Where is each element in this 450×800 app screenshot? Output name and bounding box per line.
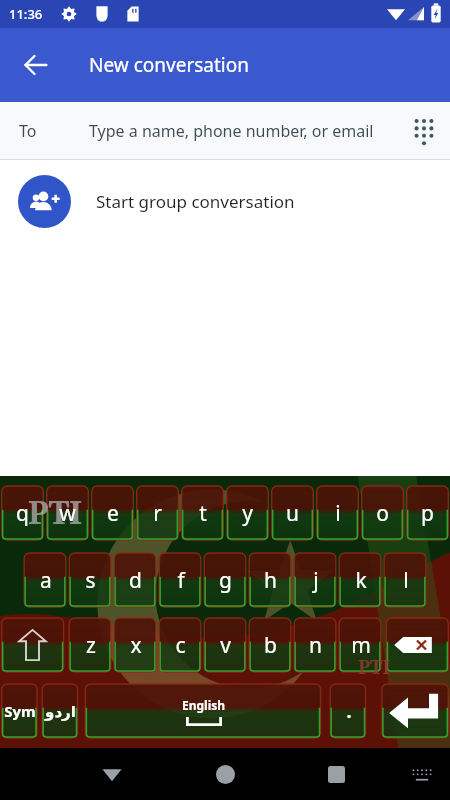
staticText: p <box>421 499 434 528</box>
button[interactable]: Start group conversation <box>0 160 450 242</box>
button[interactable]: q <box>0 486 45 540</box>
staticText: PTI <box>358 654 391 680</box>
staticText: English <box>182 697 226 713</box>
button[interactable]: o <box>360 486 405 540</box>
staticText: y <box>242 499 253 528</box>
button[interactable]: a <box>23 553 68 607</box>
button[interactable]: p <box>405 486 450 540</box>
button[interactable]: Sym <box>0 684 39 738</box>
button[interactable]: Hide keyboard <box>88 750 136 798</box>
button[interactable]: w <box>45 486 90 540</box>
button[interactable]: z <box>68 618 113 672</box>
button[interactable]: b <box>248 618 293 672</box>
staticText: w <box>59 499 76 528</box>
staticText: n <box>309 631 322 660</box>
button[interactable]: Shift <box>0 618 65 672</box>
staticText: r <box>153 499 162 528</box>
button[interactable]: Home <box>201 750 249 798</box>
staticText: h <box>264 566 277 595</box>
staticText: m <box>351 631 371 660</box>
staticText: j <box>313 566 319 595</box>
staticText: s <box>85 566 96 595</box>
button[interactable]: Recents <box>312 750 360 798</box>
staticText: Sym <box>4 701 36 721</box>
staticText: New conversation <box>89 52 249 78</box>
staticText: d <box>129 566 142 595</box>
staticText: u <box>286 499 299 528</box>
button[interactable]: u <box>270 486 315 540</box>
button[interactable]: . <box>329 684 368 738</box>
staticText: z <box>86 631 96 660</box>
button[interactable]: n <box>293 618 338 672</box>
button[interactable]: Dialpad <box>401 108 447 154</box>
button[interactable]: g <box>203 553 248 607</box>
button[interactable]: Navigate up <box>12 41 60 89</box>
staticText: q <box>16 499 29 528</box>
staticText: l <box>403 566 409 595</box>
button[interactable]: j <box>293 553 338 607</box>
staticText: Type a name, phone number, or email <box>89 120 401 142</box>
button[interactable]: i <box>315 486 360 540</box>
staticText: i <box>335 499 341 528</box>
button[interactable]: Enter <box>380 684 450 738</box>
button[interactable]: k <box>338 553 383 607</box>
button[interactable]: e <box>90 486 135 540</box>
staticText: o <box>376 499 389 528</box>
button[interactable]: y <box>225 486 270 540</box>
button[interactable]: f <box>158 553 203 607</box>
button[interactable]: r <box>135 486 180 540</box>
staticText: . <box>346 699 352 724</box>
staticText: PTI <box>28 490 83 534</box>
staticText: f <box>177 566 185 595</box>
button[interactable]: t <box>180 486 225 540</box>
button[interactable]: h <box>248 553 293 607</box>
staticText: t <box>199 499 207 528</box>
staticText: g <box>219 566 232 595</box>
staticText: b <box>264 631 277 660</box>
button[interactable]: x <box>113 618 158 672</box>
button[interactable]: s <box>68 553 113 607</box>
staticText: c <box>175 631 186 660</box>
staticText: 11:36 <box>9 5 43 23</box>
button[interactable]: c <box>158 618 203 672</box>
button[interactable]: English <box>84 684 323 738</box>
staticText: Start group conversation <box>96 190 295 213</box>
button[interactable]: m <box>338 618 383 672</box>
staticText: v <box>220 631 231 660</box>
staticText: e <box>107 499 119 528</box>
staticText: a <box>40 566 52 595</box>
staticText: To <box>19 120 37 142</box>
button[interactable]: v <box>203 618 248 672</box>
button[interactable]: d <box>113 553 158 607</box>
button[interactable]: l <box>383 553 428 607</box>
button[interactable]: اردو <box>41 684 80 738</box>
button[interactable]: Switch keyboard <box>400 752 444 796</box>
staticText: x <box>130 631 142 660</box>
button[interactable]: Backspace <box>385 618 450 672</box>
staticText: k <box>355 566 367 595</box>
staticText: اردو <box>45 703 76 720</box>
